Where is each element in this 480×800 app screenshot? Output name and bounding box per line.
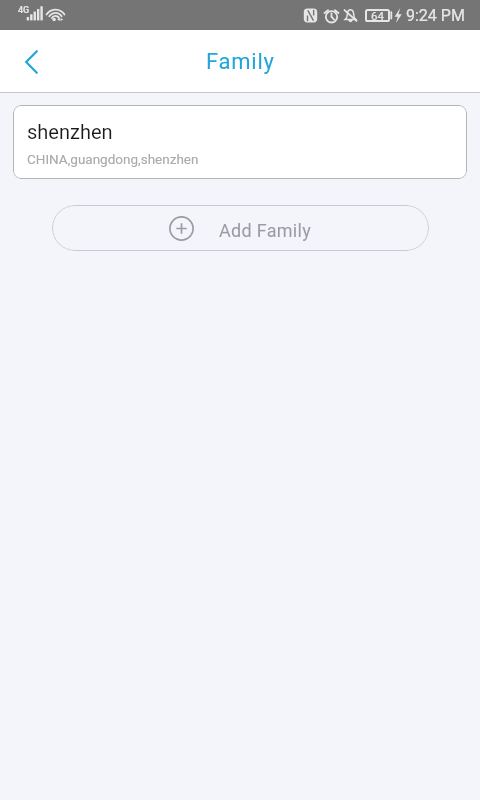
staticText: Add Family xyxy=(219,220,312,241)
staticText: shenzhen xyxy=(27,120,113,143)
staticText: 64 xyxy=(371,9,384,22)
staticText: CHINA,guangdong,shenzhen xyxy=(27,151,199,167)
staticText: 4G xyxy=(18,5,30,16)
staticText: 9:24 PM xyxy=(406,6,465,25)
button[interactable]: shenzhen xyxy=(13,105,467,179)
staticText: Family xyxy=(206,49,275,75)
button[interactable]: Back xyxy=(0,30,62,93)
button[interactable]: Add Family xyxy=(52,205,429,251)
